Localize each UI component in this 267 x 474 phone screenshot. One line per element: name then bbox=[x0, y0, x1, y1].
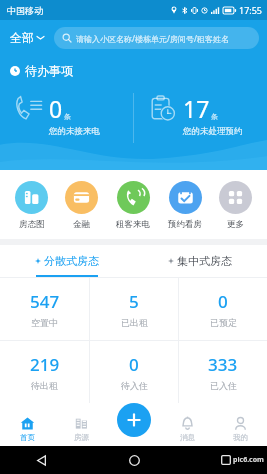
staticText: 更多 bbox=[227, 219, 244, 230]
staticText: 0 bbox=[129, 353, 139, 376]
staticText: 已入住 bbox=[210, 380, 237, 391]
staticText: 待出租 bbox=[31, 380, 58, 391]
button[interactable]: 首页 bbox=[0, 412, 54, 446]
button[interactable]: 全部 bbox=[8, 25, 46, 50]
button[interactable]: 17 bbox=[134, 93, 267, 137]
button[interactable]: 分散式房态 bbox=[0, 245, 133, 277]
staticText: 条 bbox=[211, 112, 218, 121]
button[interactable]: 333 bbox=[179, 341, 267, 403]
button[interactable]: 预约看房 bbox=[165, 181, 205, 230]
button[interactable]: Back bbox=[28, 447, 54, 473]
staticText: 全部 bbox=[10, 30, 34, 45]
staticText: 消息 bbox=[180, 433, 195, 442]
button[interactable]: 0 bbox=[90, 341, 178, 403]
staticText: 547 bbox=[30, 290, 60, 313]
staticText: 0 bbox=[218, 290, 228, 313]
staticText: 金融 bbox=[73, 219, 90, 230]
staticText: 房源 bbox=[74, 433, 89, 442]
staticText: 租客来电 bbox=[116, 219, 150, 230]
staticText: 中国移动 bbox=[7, 5, 43, 16]
staticText: 预约看房 bbox=[168, 219, 202, 230]
staticText: 分散式房态 bbox=[44, 254, 99, 268]
staticText: 0 bbox=[49, 93, 63, 124]
button[interactable]: 我的 bbox=[214, 412, 267, 446]
staticText: 您的未接来电 bbox=[49, 126, 100, 137]
button[interactable]: 房态图 bbox=[12, 181, 51, 230]
staticText: 待入住 bbox=[121, 380, 148, 391]
staticText: 您的未处理预约 bbox=[183, 126, 243, 137]
staticText: 17 bbox=[183, 93, 210, 124]
button[interactable]: 219 bbox=[0, 341, 89, 403]
staticText: 333 bbox=[208, 353, 238, 376]
staticText: 空置中 bbox=[31, 317, 58, 328]
button[interactable]: 5 bbox=[90, 278, 178, 340]
staticText: pic6.com bbox=[233, 455, 264, 465]
button[interactable]: 547 bbox=[0, 278, 89, 340]
staticText: 5 bbox=[129, 290, 139, 313]
staticText: 17:55 bbox=[239, 4, 263, 16]
button[interactable]: Recents bbox=[213, 447, 239, 473]
button[interactable]: 请输入小区名称/楼栋单元/房间号/租客姓名 bbox=[54, 27, 259, 49]
button[interactable]: Home bbox=[121, 447, 147, 473]
staticText: 219 bbox=[30, 353, 60, 376]
button[interactable]: 0 bbox=[0, 93, 133, 137]
staticText: 待办事项 bbox=[25, 63, 73, 78]
button[interactable]: 房源 bbox=[54, 412, 108, 446]
staticText: 集中式房态 bbox=[177, 254, 232, 268]
staticText: 请输入小区名称/楼栋单元/房间号/租客姓名 bbox=[76, 33, 229, 44]
staticText: 首页 bbox=[20, 433, 35, 442]
staticText: 已出租 bbox=[121, 317, 148, 328]
button[interactable]: 集中式房态 bbox=[133, 245, 267, 277]
button[interactable]: Add bbox=[117, 403, 151, 437]
staticText: 条 bbox=[64, 112, 71, 121]
button[interactable]: 0 bbox=[179, 278, 267, 340]
button[interactable]: 消息 bbox=[161, 412, 214, 446]
button[interactable]: 租客来电 bbox=[113, 181, 153, 230]
staticText: 房态图 bbox=[19, 219, 45, 230]
staticText: 已预定 bbox=[210, 317, 237, 328]
staticText: 我的 bbox=[233, 433, 248, 442]
button[interactable]: 金融 bbox=[62, 181, 101, 230]
button[interactable]: 更多 bbox=[216, 181, 255, 230]
